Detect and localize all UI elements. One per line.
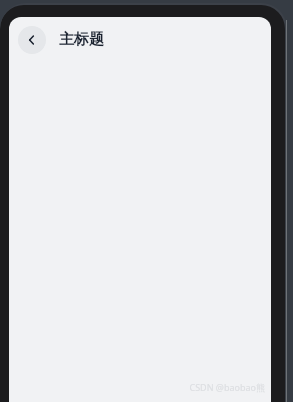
button[interactable]: Back	[18, 26, 46, 54]
staticText: 主标题	[59, 30, 104, 49]
staticText: CSDN @baobao熊	[189, 381, 265, 393]
